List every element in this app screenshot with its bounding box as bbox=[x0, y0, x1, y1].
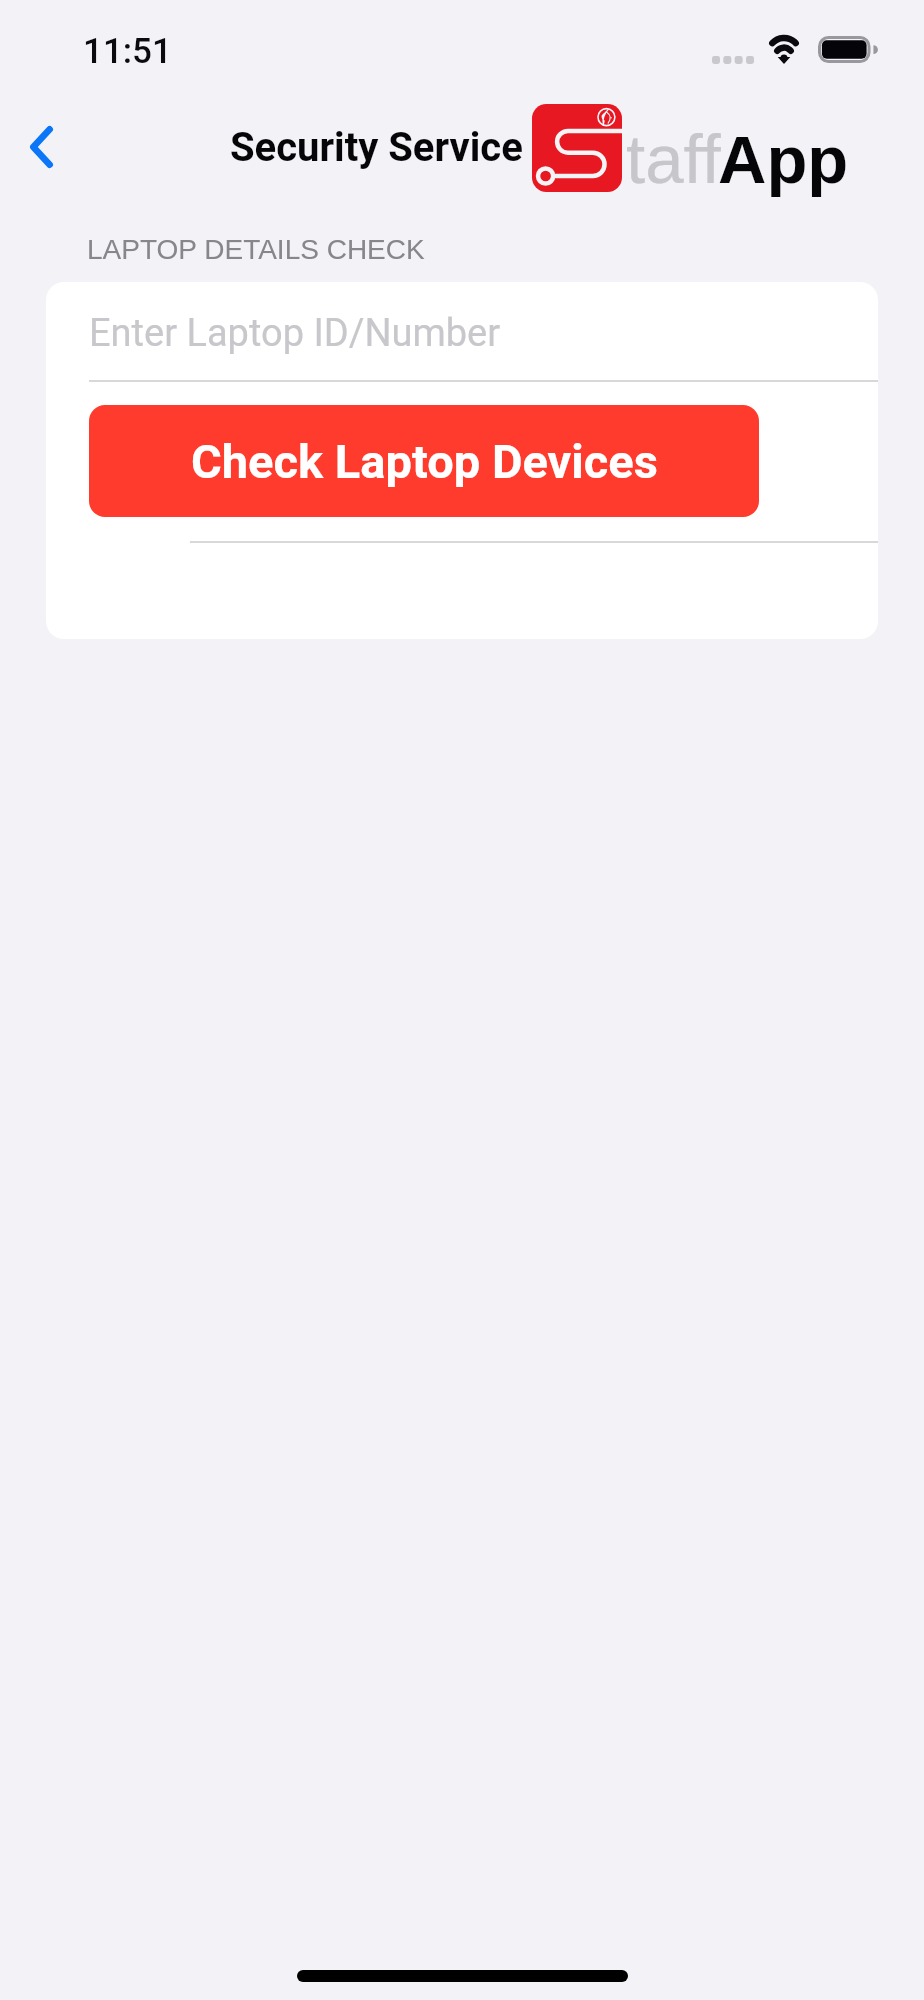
staticText: App bbox=[718, 122, 849, 197]
staticText: taff bbox=[626, 121, 721, 198]
staticText: LAPTOP DETAILS CHECK bbox=[87, 234, 425, 265]
staticText: Check Laptop Devices bbox=[191, 434, 658, 489]
staticText: Security Service bbox=[230, 124, 523, 171]
button[interactable]: Check Laptop Devices bbox=[89, 405, 759, 517]
staticText: 11:51 bbox=[83, 31, 172, 72]
button[interactable]: Back bbox=[0, 103, 82, 191]
staticText: Enter Laptop ID/Number bbox=[89, 311, 501, 356]
button[interactable]: Enter Laptop ID/Number bbox=[46, 282, 878, 380]
